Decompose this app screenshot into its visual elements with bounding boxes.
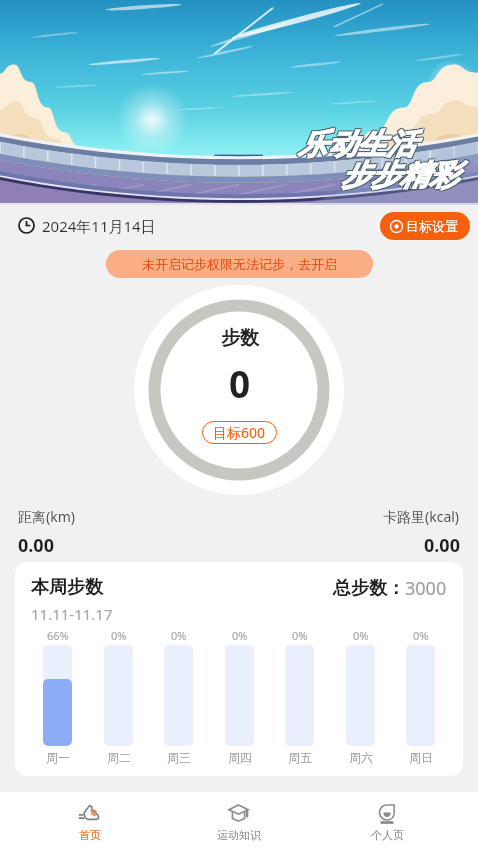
staticText: 未开启记步权限无法记步，去开启 — [142, 256, 337, 272]
staticText: 0 — [229, 358, 251, 408]
staticText: 步步精彩 — [342, 157, 460, 194]
staticText: 3000 — [405, 576, 447, 601]
staticText: 乐动生活 — [297, 126, 415, 163]
button[interactable]: 运动知识 — [164, 792, 313, 850]
staticText: 0% — [232, 628, 248, 643]
staticText: 66% — [47, 628, 69, 643]
staticText: 运动知识 — [217, 828, 261, 842]
staticText: 乐动生活 — [299, 126, 417, 163]
staticText: 0.00 — [18, 533, 54, 558]
button[interactable]: 个人页 — [313, 792, 462, 850]
staticText: 周一 — [46, 750, 70, 765]
staticText: 个人页 — [371, 828, 404, 842]
staticText: 卡路里(kcal) — [383, 507, 460, 526]
staticText: 目标设置 — [406, 218, 458, 234]
staticText: 2024年11月14日 — [42, 216, 156, 236]
staticText: 首页 — [79, 828, 101, 842]
staticText: 总步数： — [333, 577, 405, 600]
staticText: 乐动生活 — [299, 127, 417, 164]
staticText: 步步精彩 — [341, 156, 459, 193]
staticText: 0% — [292, 628, 308, 643]
staticText: 步数 — [221, 326, 259, 350]
staticText: 0.00 — [424, 533, 460, 558]
staticText: 0% — [413, 628, 429, 643]
staticText: 步步精彩 — [340, 156, 458, 193]
staticText: 乐动生活 — [298, 125, 416, 162]
staticText: 步步精彩 — [341, 157, 459, 194]
staticText: 周四 — [228, 750, 252, 765]
staticText: 周日 — [409, 750, 433, 765]
staticText: 乐动生活 — [297, 127, 415, 164]
staticText: 乐动生活 — [298, 126, 416, 163]
staticText: 周六 — [349, 750, 373, 765]
staticText: 本周步数 — [31, 576, 103, 599]
button[interactable]: 目标600 — [202, 421, 277, 444]
staticText: 0% — [111, 628, 127, 643]
button[interactable]: 首页 — [16, 792, 164, 850]
staticText: 步步精彩 — [342, 156, 460, 193]
staticText: 步步精彩 — [342, 158, 460, 195]
staticText: 11.11-11.17 — [31, 604, 113, 624]
staticText: 目标600 — [213, 423, 266, 442]
staticText: 周三 — [167, 750, 191, 765]
staticText: 距离(km) — [18, 507, 75, 526]
staticText: 步步精彩 — [341, 158, 459, 195]
staticText: 0% — [171, 628, 187, 643]
staticText: 步步精彩 — [340, 157, 458, 194]
staticText: 乐动生活 — [297, 125, 415, 162]
staticText: 乐动生活 — [299, 125, 417, 162]
staticText: 乐动生活 — [298, 127, 416, 164]
staticText: 周二 — [107, 750, 131, 765]
staticText: 0% — [353, 628, 369, 643]
button[interactable]: 目标设置 — [380, 212, 470, 240]
staticText: 步步精彩 — [340, 158, 458, 195]
staticText: 周五 — [288, 750, 312, 765]
button[interactable]: 未开启记步权限无法记步，去开启 — [106, 250, 373, 278]
